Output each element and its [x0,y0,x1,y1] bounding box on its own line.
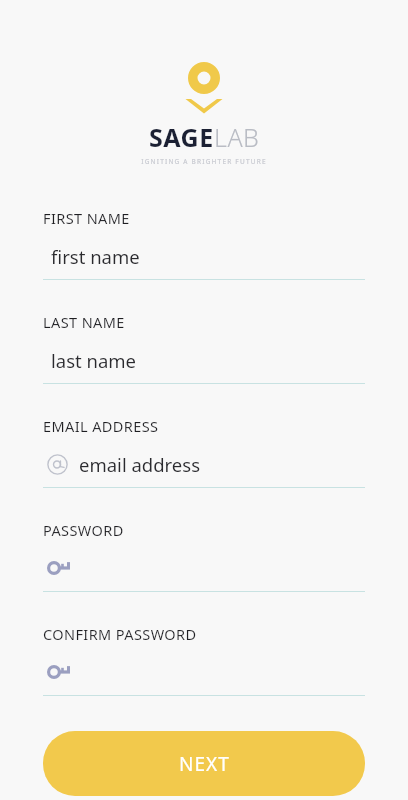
other: Password [47,665,71,679]
button[interactable]: PASSWORD [43,520,365,592]
staticText: IGNITING A BRIGHTER FUTURE [141,157,267,166]
button[interactable]: CONFIRM PASSWORD [43,624,365,696]
button[interactable]: EMAIL ADDRESS [43,416,365,488]
staticText: EMAIL ADDRESS [43,416,159,436]
staticText: first name [51,244,140,269]
other: Password [47,561,71,575]
staticText: email address [79,452,201,477]
button[interactable]: NEXT [43,731,365,796]
staticText: last name [51,348,137,373]
staticText: LAST NAME [43,312,125,332]
staticText: LAB [214,120,260,154]
staticText: NEXT [179,751,230,777]
staticText: PASSWORD [43,520,124,540]
button[interactable]: LAST NAME [43,312,365,384]
staticText: CONFIRM PASSWORD [43,624,197,644]
button[interactable]: FIRST NAME [43,208,365,280]
staticText: FIRST NAME [43,208,130,228]
other: Email [47,454,68,475]
staticText: SAGE [149,120,214,154]
